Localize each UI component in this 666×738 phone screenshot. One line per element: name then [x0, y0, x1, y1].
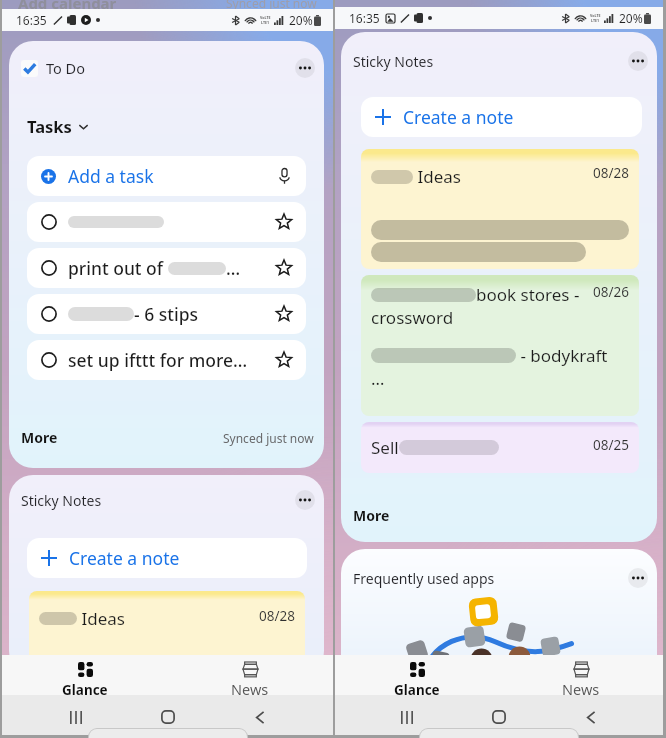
staticText: 16:35: [349, 10, 380, 26]
other: Mark complete: [41, 260, 57, 276]
button[interactable]: Glance: [2, 655, 167, 695]
button[interactable]: Mark complete: [27, 294, 306, 334]
staticText: LTE1: [261, 20, 270, 25]
staticText: 08/25: [593, 436, 629, 454]
staticText: Glance: [394, 681, 440, 695]
other: Mark complete: [41, 214, 57, 230]
button[interactable]: Home: [155, 708, 181, 726]
staticText: Glance: [62, 681, 108, 695]
button[interactable]: Home: [486, 708, 512, 726]
button[interactable]: Recent apps: [63, 708, 89, 726]
other: Mark complete: [41, 352, 57, 368]
staticText: VoLTE: [590, 13, 601, 18]
button[interactable]: Recent apps: [394, 708, 420, 726]
staticText: Add calendar: [18, 0, 117, 13]
staticText: News: [231, 679, 269, 695]
other: Voice input: [279, 168, 290, 184]
staticText: print out of: [68, 256, 168, 280]
staticText: 08/26: [593, 283, 629, 301]
button[interactable]: More options: [295, 58, 315, 78]
button[interactable]: book stores -: [361, 275, 639, 416]
staticText: Create a note: [69, 546, 180, 570]
button[interactable]: Mark complete: [27, 202, 306, 242]
button[interactable]: Mark complete: [27, 248, 306, 288]
staticText: set up ifttt for more…: [68, 348, 248, 372]
staticText: To Do: [46, 58, 85, 78]
button[interactable]: More: [21, 428, 58, 447]
staticText: Frequently used apps: [353, 569, 495, 588]
other: Star task: [276, 352, 292, 368]
button[interactable]: Add a task: [27, 156, 306, 196]
button[interactable]: Back: [247, 708, 273, 726]
button[interactable]: Sell: [361, 422, 639, 473]
other: Star task: [276, 214, 292, 230]
button[interactable]: Ideas: [29, 591, 305, 671]
button[interactable]: More options: [628, 51, 648, 71]
staticText: - bodykraft: [516, 344, 608, 367]
staticText: Sticky Notes: [353, 52, 434, 71]
other: Star task: [276, 306, 292, 322]
button[interactable]: More options: [295, 490, 315, 510]
staticText: book stores -: [476, 283, 580, 306]
staticText: News: [562, 679, 600, 695]
staticText: Add a task: [68, 164, 154, 188]
button[interactable]: Back: [578, 708, 604, 726]
staticText: - 6 stips: [134, 302, 199, 326]
staticText: 08/28: [259, 607, 295, 625]
staticText: Tasks: [27, 115, 72, 137]
button[interactable]: Create a note: [361, 97, 642, 137]
staticText: LTE1: [591, 18, 600, 23]
button[interactable]: Tasks: [27, 115, 89, 137]
staticText: Ideas: [77, 607, 125, 630]
staticText: VoLTE: [260, 15, 271, 20]
staticText: Sticky Notes: [21, 491, 102, 510]
other: Mark complete: [41, 306, 57, 322]
button[interactable]: Mark complete: [27, 340, 306, 380]
staticText: crossword: [371, 306, 454, 329]
staticText: 16:35: [16, 12, 47, 28]
staticText: 08/28: [593, 164, 629, 182]
staticText: Sell: [371, 436, 399, 459]
staticText: Ideas: [413, 165, 461, 188]
staticText: Synced just now: [223, 430, 314, 446]
button[interactable]: Glance: [335, 655, 499, 695]
staticText: 20%: [619, 10, 643, 26]
button[interactable]: More: [353, 506, 390, 525]
button[interactable]: Create a note: [27, 538, 307, 578]
button[interactable]: News: [167, 655, 333, 695]
staticText: 20%: [289, 12, 313, 28]
staticText: …: [371, 367, 385, 390]
staticText: Create a note: [403, 105, 514, 129]
other: Star task: [276, 260, 292, 276]
button[interactable]: More options: [628, 568, 648, 588]
staticText: …: [226, 256, 241, 280]
button[interactable]: News: [499, 655, 663, 695]
staticText: Synced just now: [226, 0, 317, 11]
button[interactable]: Ideas: [361, 149, 639, 269]
